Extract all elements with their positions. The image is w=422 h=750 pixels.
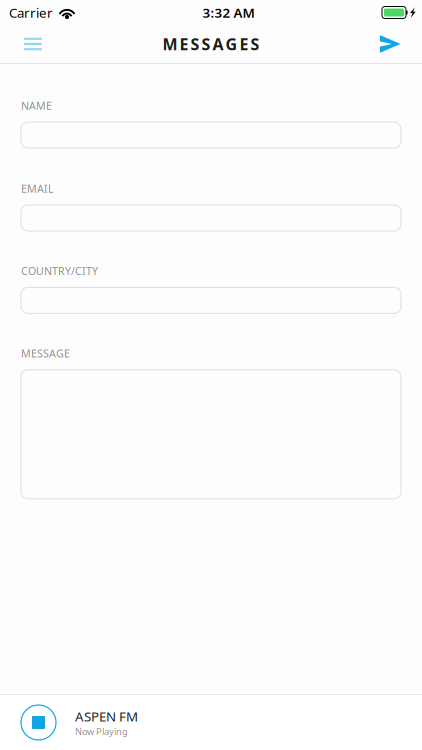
staticText: MESSAGE xyxy=(21,346,70,360)
staticText: 3:32 AM xyxy=(202,4,254,21)
button[interactable]: Menu xyxy=(9,25,57,63)
staticText: NAME xyxy=(21,98,52,113)
button[interactable]: Stop xyxy=(21,705,56,740)
staticText: COUNTRY/CITY xyxy=(21,264,98,278)
staticText: EMAIL xyxy=(21,181,54,196)
button[interactable]: Send xyxy=(369,25,411,63)
staticText: Carrier xyxy=(9,4,53,21)
staticText: ASPEN FM xyxy=(75,707,138,725)
staticText: M E S S A G E S xyxy=(162,33,259,55)
staticText: Now Playing xyxy=(75,725,128,738)
